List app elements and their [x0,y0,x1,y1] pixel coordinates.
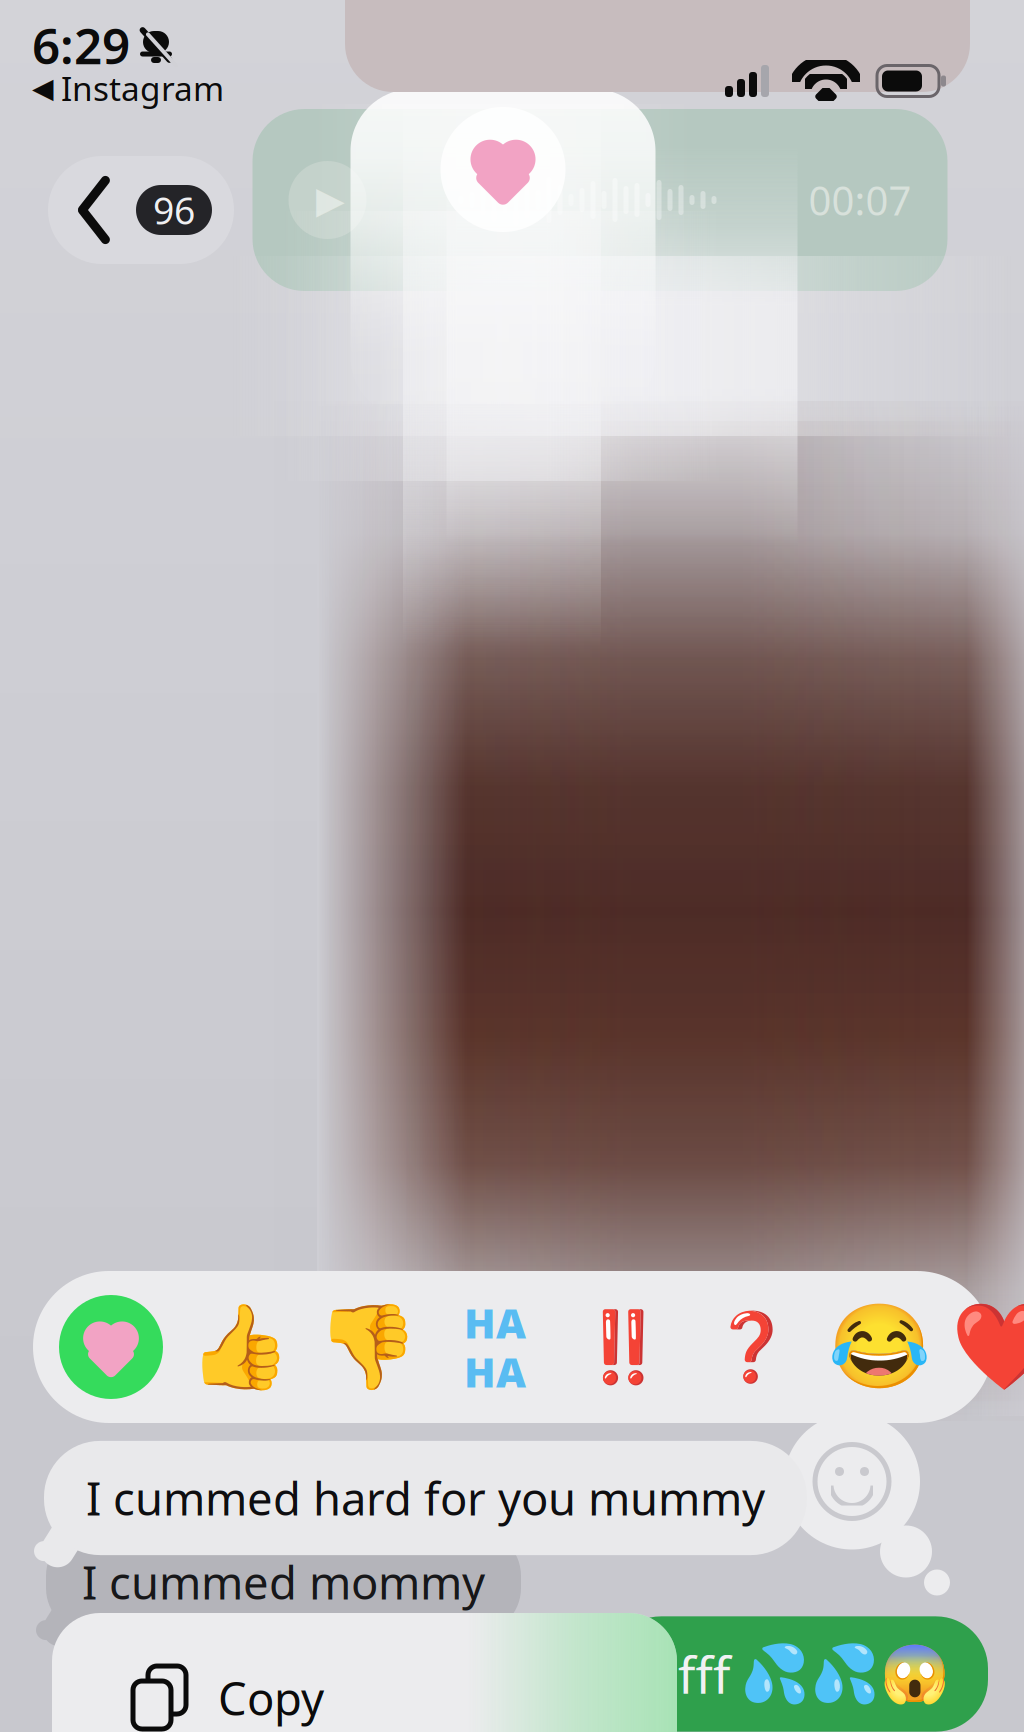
staticText: ◀ [32,72,54,104]
button[interactable]: 96 [48,156,234,264]
staticText: ufff [647,1640,730,1708]
button[interactable]: Haha reaction [439,1271,551,1423]
button[interactable]: ◀ [32,68,224,108]
button[interactable]: Copy [52,1613,677,1732]
button[interactable]: Red heart sticker [951,1271,993,1423]
staticText: 💦💦😱 [740,1642,950,1706]
staticText: ▶ [316,179,345,221]
staticText: 👍 [187,1300,290,1394]
staticText: 96 [153,185,195,235]
staticText: Instagram [61,66,224,110]
staticText: 6:29 [32,12,130,78]
staticText: I cummed mommy [82,1552,485,1612]
staticText: I cummed hard for you mummy [86,1468,765,1528]
button[interactable]: Dislike reaction [311,1271,423,1423]
staticText: Copy [218,1668,324,1728]
staticText: ❤️ [951,1298,1024,1396]
staticText: ❓ [709,1309,792,1385]
button[interactable]: Question reaction [695,1271,807,1423]
staticText: 👎 [315,1300,418,1394]
button[interactable]: Love reaction, selected [55,1271,167,1423]
staticText: 😂 [827,1300,930,1394]
staticText: 00:07 [808,173,911,226]
button[interactable]: Emphasize reaction [567,1271,679,1423]
staticText: HA [464,1344,526,1399]
staticText: ‼️ [580,1307,666,1387]
button[interactable]: Like reaction [183,1271,295,1423]
button[interactable]: Laugh reaction [823,1271,935,1423]
staticText: HA [464,1295,526,1350]
